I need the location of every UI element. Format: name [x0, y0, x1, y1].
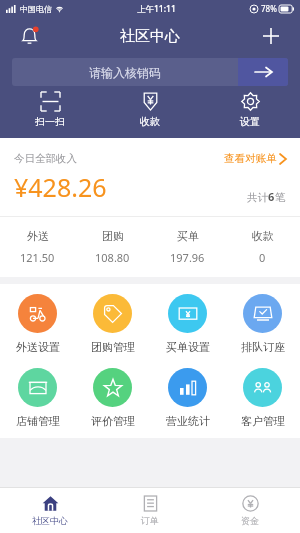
button[interactable]: 店铺管理: [0, 368, 75, 428]
staticText: 团购管理: [91, 340, 135, 354]
staticText: 121.50: [20, 250, 55, 265]
staticText: 买单设置: [166, 340, 210, 354]
staticText: 上午11:11: [137, 3, 176, 15]
button[interactable]: 扫一扫: [0, 86, 100, 134]
button[interactable]: 买单: [150, 229, 225, 265]
button[interactable]: 买单设置: [150, 294, 225, 354]
staticText: 108.80: [95, 250, 130, 265]
staticText: 外送设置: [16, 340, 60, 354]
staticText: 收款: [252, 229, 274, 243]
button[interactable]: 收款: [100, 86, 200, 134]
staticText: 今日全部收入: [14, 152, 77, 165]
staticText: 店铺管理: [16, 414, 60, 428]
staticText: 6: [268, 189, 275, 204]
staticText: 资金: [241, 515, 259, 526]
button[interactable]: 营业统计: [150, 368, 225, 428]
staticText: 查看对账单: [224, 152, 277, 165]
staticText: 订单: [141, 515, 159, 526]
button[interactable]: 排队订座: [225, 294, 300, 354]
staticText: 团购: [102, 229, 124, 243]
staticText: 社区中心: [120, 27, 180, 46]
staticText: 收款: [140, 115, 160, 128]
staticText: 排队订座: [241, 340, 285, 354]
button[interactable]: 社区中心: [0, 488, 100, 533]
staticText: 设置: [240, 115, 260, 128]
button[interactable]: 团购管理: [75, 294, 150, 354]
staticText: 社区中心: [32, 515, 68, 526]
staticText: 营业统计: [166, 414, 210, 428]
staticText: 买单: [177, 229, 199, 243]
button[interactable]: Add: [256, 21, 286, 51]
button[interactable]: 外送设置: [0, 294, 75, 354]
staticText: 客户管理: [241, 414, 285, 428]
staticText: 扫一扫: [35, 115, 65, 128]
button[interactable]: 客户管理: [225, 368, 300, 428]
staticText: 共计: [247, 191, 268, 204]
button[interactable]: 团购: [75, 229, 150, 265]
staticText: 中国电信: [20, 4, 52, 14]
staticText: 评价管理: [91, 414, 135, 428]
button[interactable]: 评价管理: [75, 368, 150, 428]
button[interactable]: 设置: [200, 86, 300, 134]
button[interactable]: Notifications: [14, 21, 44, 51]
staticText: ¥428.26: [14, 170, 107, 204]
button[interactable]: 收款: [225, 229, 300, 265]
button[interactable]: 请输入核销码: [12, 58, 288, 86]
button[interactable]: 资金: [200, 488, 300, 533]
button[interactable]: 查看对账单: [224, 152, 286, 165]
staticText: 0: [259, 250, 266, 265]
staticText: 笔: [275, 191, 286, 204]
staticText: 外送: [27, 229, 49, 243]
staticText: 197.96: [170, 250, 205, 265]
staticText: 78%: [261, 3, 277, 14]
button[interactable]: 订单: [100, 488, 200, 533]
button[interactable]: 外送: [0, 229, 75, 265]
staticText: 请输入核销码: [89, 65, 161, 80]
